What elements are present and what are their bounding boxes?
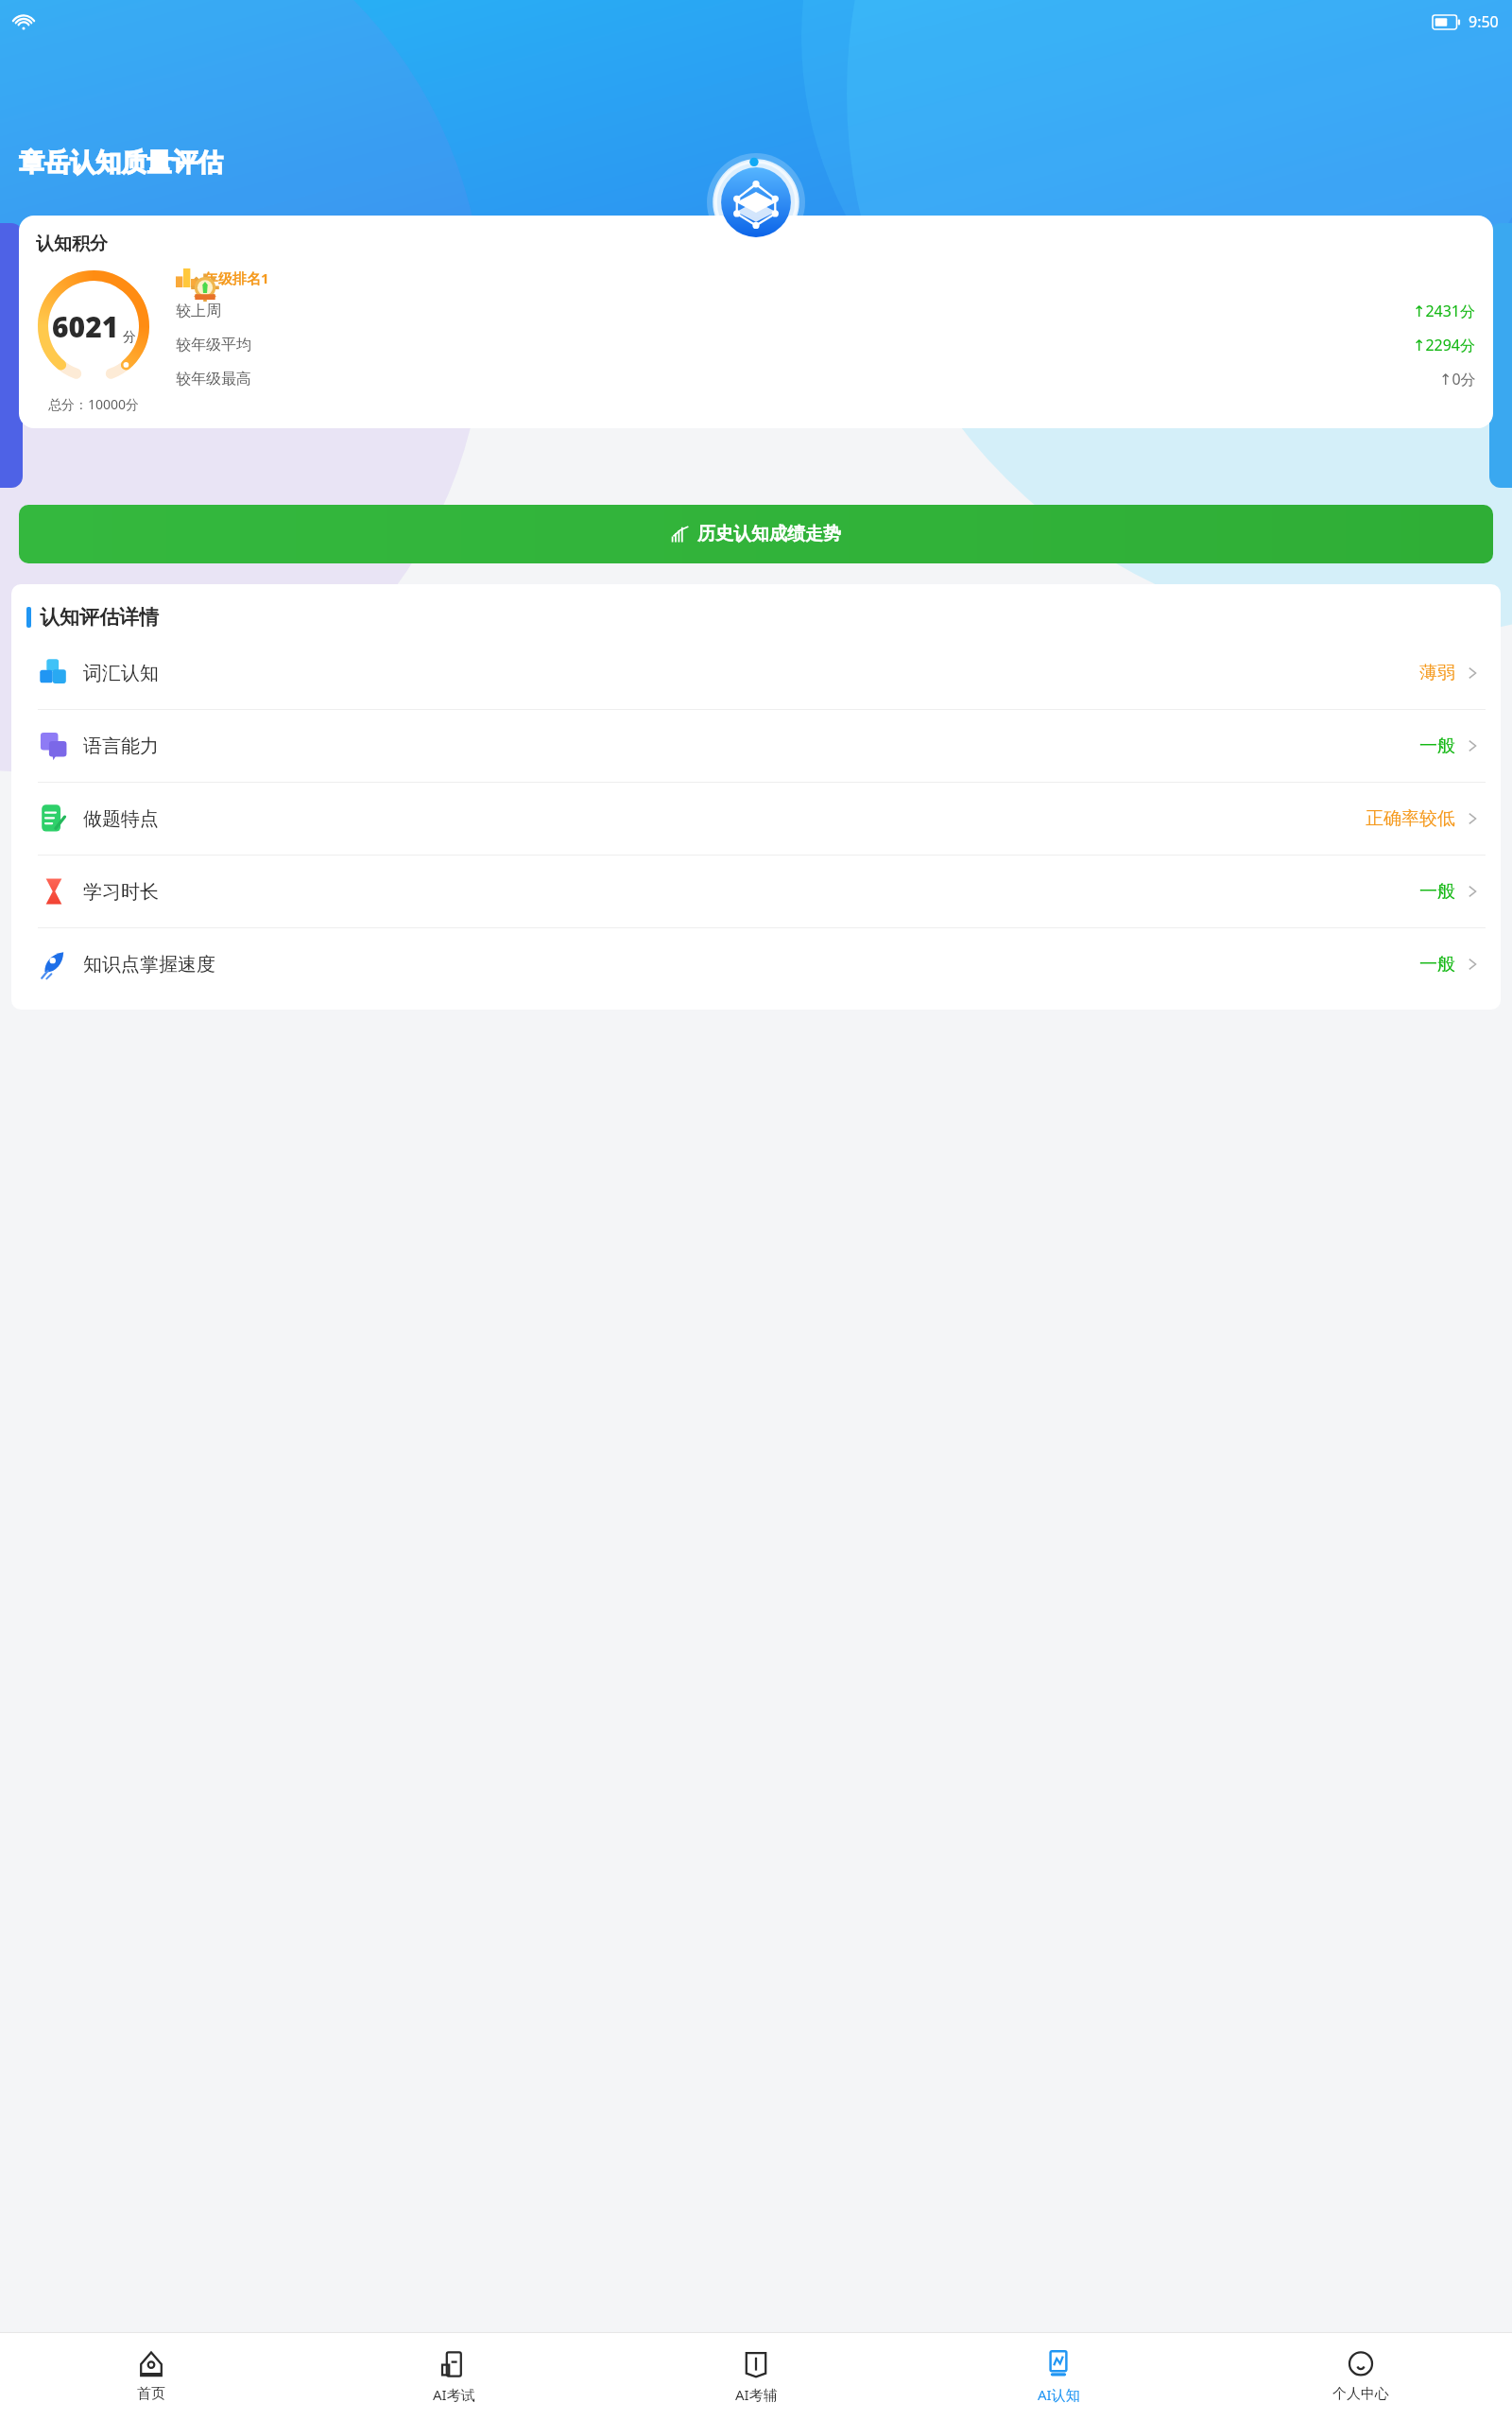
button[interactable]: AI考辅 bbox=[605, 2333, 907, 2420]
button[interactable]: AI认知 bbox=[907, 2333, 1210, 2420]
staticText: 薄弱 bbox=[1419, 662, 1455, 684]
button[interactable]: AI考试 bbox=[302, 2333, 605, 2420]
staticText: 词汇认知 bbox=[83, 662, 159, 685]
staticText: 历史认知成绩走势 bbox=[697, 523, 841, 545]
staticText: 正确率较低 bbox=[1366, 807, 1455, 830]
button[interactable]: 语言能力 bbox=[11, 710, 1501, 782]
staticText: ↑2431分 bbox=[1413, 301, 1476, 321]
staticText: 一般 bbox=[1419, 735, 1455, 757]
button[interactable]: 个人中心 bbox=[1210, 2333, 1512, 2420]
staticText: 首页 bbox=[137, 2385, 165, 2403]
staticText: 较上周 bbox=[176, 302, 221, 320]
button[interactable]: 词汇认知 bbox=[11, 637, 1501, 709]
button[interactable]: 做题特点 bbox=[11, 783, 1501, 855]
staticText: 年级排名1 bbox=[204, 268, 269, 287]
staticText: 认知评估详情 bbox=[40, 605, 159, 630]
staticText: AI考辅 bbox=[735, 2385, 778, 2404]
staticText: 6021 bbox=[52, 307, 119, 346]
staticText: 一般 bbox=[1419, 953, 1455, 976]
button[interactable]: 认知积分 bbox=[19, 216, 1493, 428]
staticText: 总分：10000分 bbox=[48, 395, 140, 413]
button[interactable]: 历史认知成绩走势 bbox=[19, 505, 1493, 563]
staticText: AI认知 bbox=[1038, 2385, 1080, 2404]
button[interactable]: 知识点掌握速度 bbox=[11, 928, 1501, 1000]
staticText: 9:50 bbox=[1469, 11, 1499, 32]
staticText: 章岳认知质量评估 bbox=[19, 147, 223, 179]
staticText: 个人中心 bbox=[1332, 2385, 1389, 2403]
staticText: 语言能力 bbox=[83, 735, 159, 758]
staticText: 认知积分 bbox=[36, 233, 108, 255]
staticText: 较年级最高 bbox=[176, 370, 251, 389]
staticText: ↑0分 bbox=[1439, 369, 1476, 389]
staticText: AI考试 bbox=[433, 2385, 475, 2404]
staticText: 学习时长 bbox=[83, 880, 159, 904]
button[interactable]: 首页 bbox=[0, 2333, 302, 2420]
staticText: 做题特点 bbox=[83, 807, 159, 831]
button[interactable]: 学习时长 bbox=[11, 856, 1501, 927]
staticText: 知识点掌握速度 bbox=[83, 953, 215, 977]
staticText: 较年级平均 bbox=[176, 336, 251, 354]
staticText: 一般 bbox=[1419, 880, 1455, 903]
staticText: ↑2294分 bbox=[1413, 335, 1476, 355]
staticText: 分 bbox=[123, 329, 136, 346]
